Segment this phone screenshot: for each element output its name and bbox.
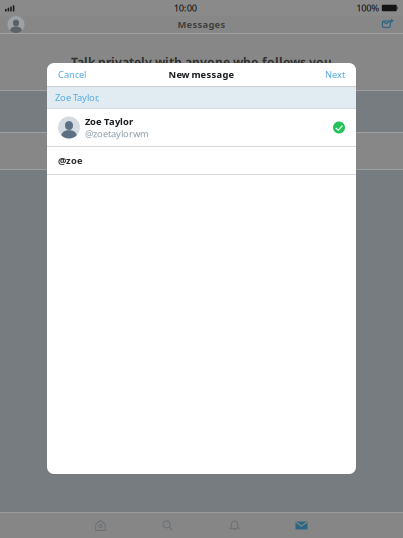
staticText: Next <box>325 68 345 81</box>
staticText: 100% <box>356 2 379 14</box>
button[interactable]: Zoe Taylor <box>47 108 356 146</box>
button[interactable]: Cancel <box>47 63 95 86</box>
staticText: @zoe <box>58 154 83 167</box>
staticText: Zoe Taylor <box>85 115 133 127</box>
staticText: Cancel <box>58 68 86 81</box>
button[interactable]: Profile <box>2 16 30 33</box>
staticText: @zoetaylorwm <box>85 127 149 140</box>
staticText: New message <box>168 68 234 81</box>
button[interactable]: Notifications <box>201 513 268 538</box>
button[interactable]: Next <box>316 63 356 86</box>
button[interactable]: @zoe <box>47 147 356 174</box>
button[interactable]: New message <box>374 16 402 33</box>
staticText: 10:00 <box>174 2 197 14</box>
button[interactable]: Home <box>67 513 134 538</box>
staticText: Talk privately with anyone who follows y… <box>71 54 332 70</box>
staticText: Zoe Taylor, <box>55 91 100 104</box>
staticText: Messages <box>177 18 225 31</box>
button[interactable]: Messages <box>268 513 335 538</box>
